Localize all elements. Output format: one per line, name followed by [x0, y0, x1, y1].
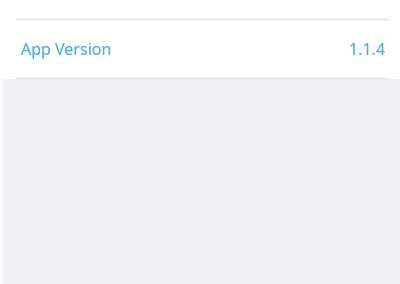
- staticText: App Version: [21, 38, 112, 60]
- staticText: 1.1.4: [349, 38, 386, 60]
- button[interactable]: App Version: [0, 20, 400, 78]
